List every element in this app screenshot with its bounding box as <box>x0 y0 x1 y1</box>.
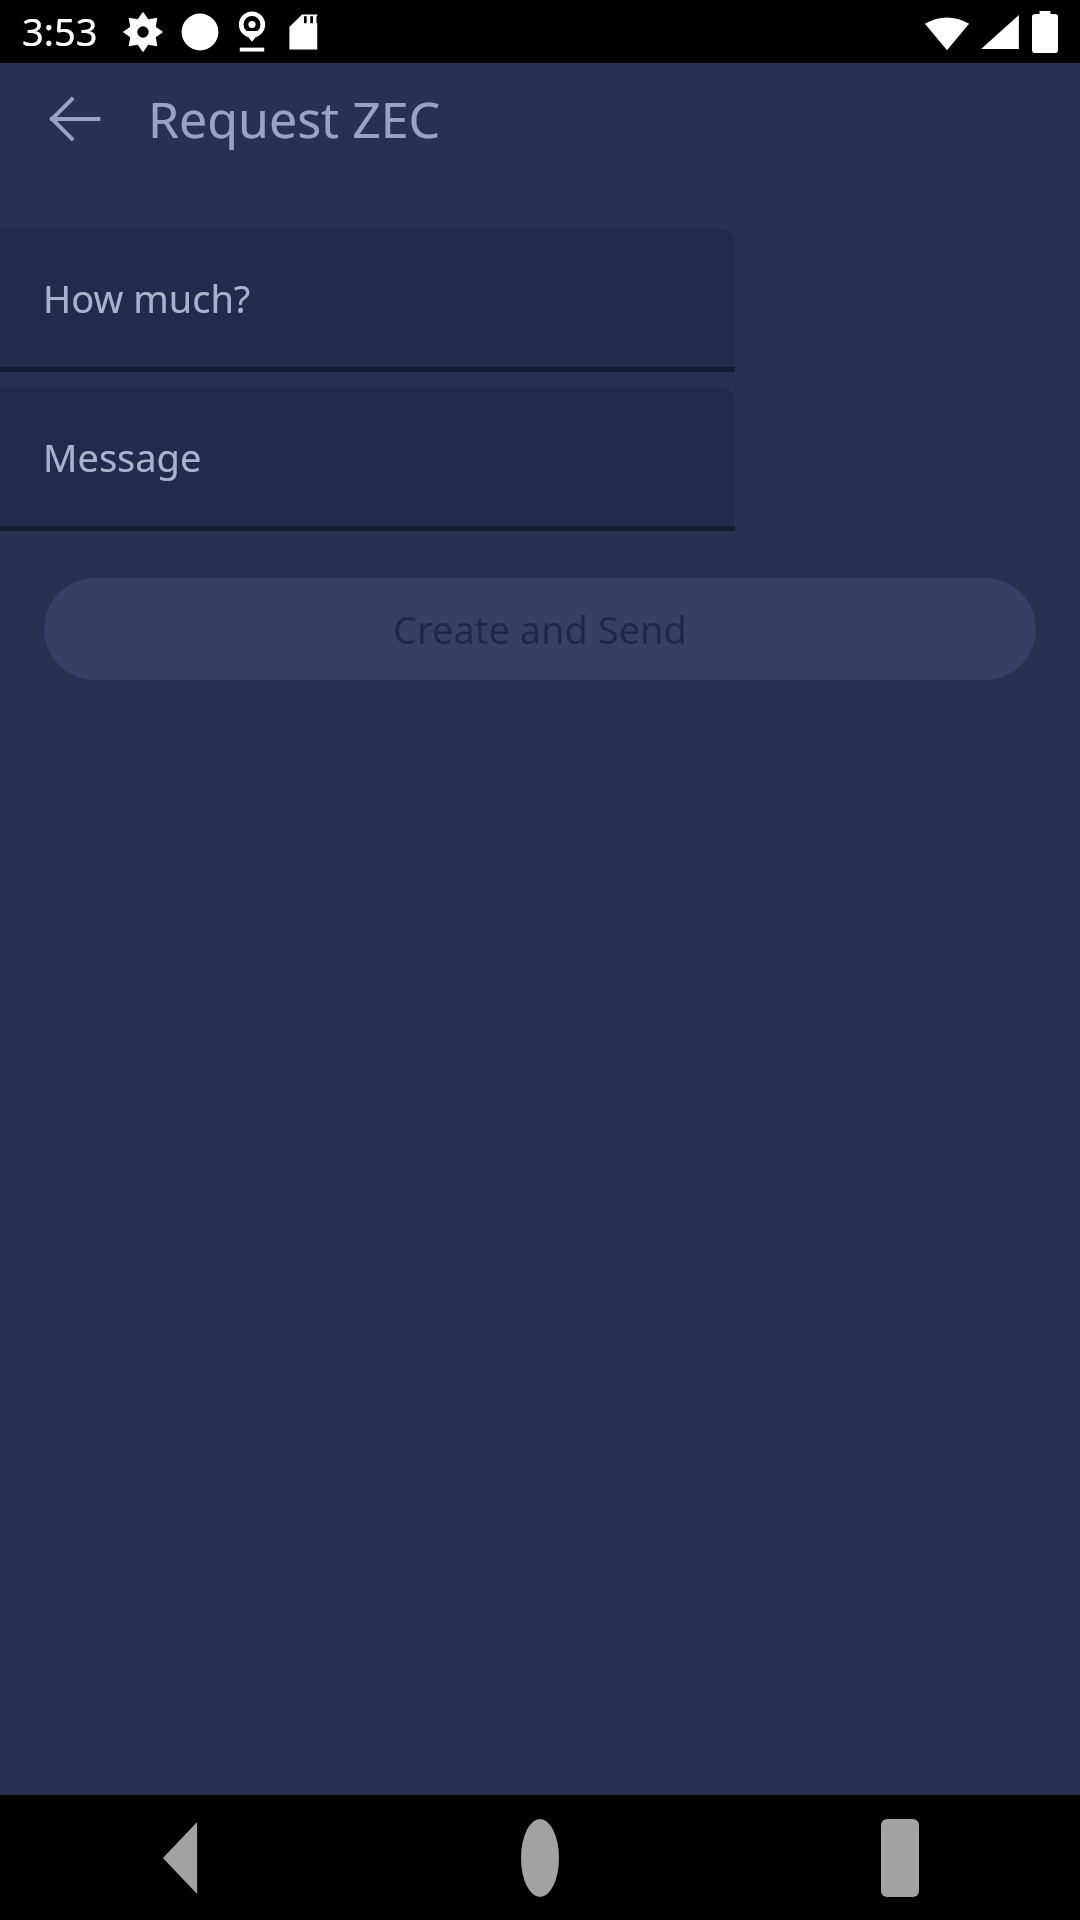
staticText: Create and Send <box>393 603 687 655</box>
staticText: 3:53 <box>22 5 98 57</box>
button[interactable]: Navigate up <box>27 71 123 167</box>
button[interactable]: Back <box>0 1795 360 1920</box>
staticText: Message <box>43 431 202 483</box>
button[interactable]: Home <box>360 1795 720 1920</box>
button[interactable]: Create and Send <box>44 578 1036 680</box>
staticText: Request ZEC <box>148 85 441 153</box>
button[interactable]: Message <box>0 388 735 526</box>
button[interactable]: How much? <box>0 229 735 367</box>
button[interactable]: Recent apps <box>720 1795 1080 1920</box>
staticText: How much? <box>43 272 251 324</box>
